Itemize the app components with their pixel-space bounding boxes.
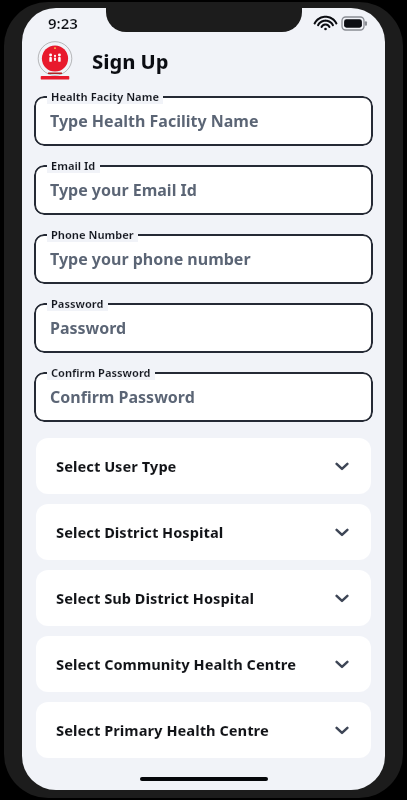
button[interactable]: Select Community Health Centre	[36, 636, 371, 692]
staticText: Select District Hospital	[56, 522, 333, 542]
staticText: 9:23	[48, 13, 78, 33]
staticText: Password	[51, 296, 104, 311]
staticText: Phone Number	[51, 227, 134, 242]
other: Expand	[333, 523, 351, 541]
staticText: Select Primary Health Centre	[56, 720, 333, 740]
button[interactable]: Select User Type	[36, 438, 371, 494]
staticText: Sign Up	[92, 48, 169, 75]
button[interactable]: Type your Email Id	[34, 165, 373, 215]
other: Expand	[333, 457, 351, 475]
staticText: Health Facity Name	[51, 89, 159, 104]
button[interactable]: Password	[34, 303, 373, 353]
button[interactable]: Select District Hospital	[36, 504, 371, 560]
staticText: Select Sub District Hospital	[56, 588, 333, 608]
staticText: Select User Type	[56, 456, 333, 476]
staticText: Email Id	[51, 158, 96, 173]
staticText: Type your phone number	[50, 248, 251, 270]
button[interactable]: Type Health Facility Name	[34, 96, 373, 146]
button[interactable]: Confirm Password	[34, 372, 373, 422]
staticText: Password	[50, 317, 127, 339]
other: Expand	[333, 589, 351, 607]
button[interactable]: Type your phone number	[34, 234, 373, 284]
button[interactable]: Select Sub District Hospital	[36, 570, 371, 626]
other: Expand	[333, 655, 351, 673]
staticText: Confirm Password	[50, 386, 195, 408]
button[interactable]: Select Primary Health Centre	[36, 702, 371, 758]
staticText: Confirm Password	[51, 365, 151, 380]
other: NHM Tripura logo	[34, 40, 76, 82]
staticText: Type your Email Id	[50, 179, 197, 201]
staticText: Select Community Health Centre	[56, 654, 333, 674]
other: Expand	[333, 721, 351, 739]
staticText: Type Health Facility Name	[50, 110, 259, 132]
